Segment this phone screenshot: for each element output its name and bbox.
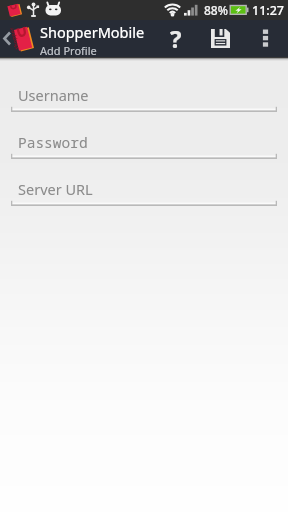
- button[interactable]: Username: [0, 79, 288, 126]
- button[interactable]: Save: [202, 20, 239, 57]
- staticText: shopper: [7, 26, 20, 50]
- button[interactable]: Server URL: [0, 173, 288, 220]
- button[interactable]: Navigate up: [0, 20, 40, 57]
- button[interactable]: Help: [157, 20, 195, 57]
- staticText: Server URL: [18, 179, 93, 199]
- staticText: Add Profile: [40, 43, 97, 58]
- staticText: Username: [18, 85, 89, 105]
- staticText: Password: [18, 132, 88, 152]
- button[interactable]: Password: [0, 126, 288, 173]
- staticText: ?: [170, 22, 182, 55]
- staticText: 11:27: [252, 2, 285, 19]
- staticText: 88%: [204, 2, 228, 18]
- staticText: ShopperMobile: [40, 22, 145, 42]
- button[interactable]: More options: [248, 20, 282, 57]
